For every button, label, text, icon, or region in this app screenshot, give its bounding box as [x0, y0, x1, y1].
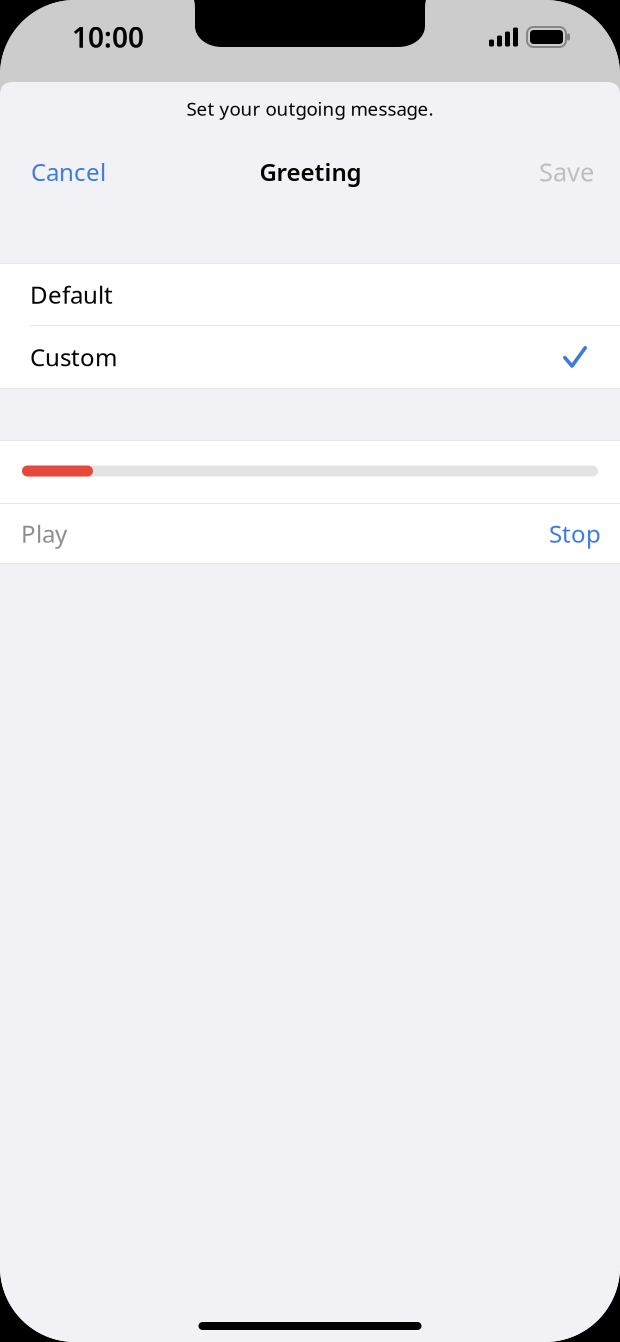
button[interactable]: Stop — [310, 504, 620, 563]
staticText: Greeting — [259, 156, 361, 188]
staticText: Play — [21, 518, 67, 549]
button[interactable]: Save — [529, 146, 599, 197]
button[interactable]: Default — [0, 264, 620, 325]
staticText: Set your outgoing message. — [186, 96, 433, 121]
staticText: Cancel — [31, 156, 106, 188]
staticText: Default — [30, 279, 113, 310]
button[interactable]: Cancel — [21, 147, 116, 197]
staticText: Save — [539, 155, 594, 188]
staticText: Custom — [30, 341, 117, 373]
staticText: Stop — [549, 518, 601, 549]
staticText: 10:00 — [72, 18, 144, 56]
button[interactable]: Play — [0, 504, 310, 563]
button[interactable]: Playback position — [0, 441, 620, 503]
button[interactable]: Custom — [0, 326, 620, 388]
